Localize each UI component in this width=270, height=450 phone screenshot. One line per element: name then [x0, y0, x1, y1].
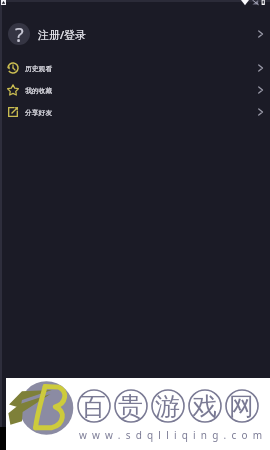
- staticText: ?: [15, 23, 24, 43]
- staticText: 网: [229, 391, 254, 422]
- staticText: 百: [81, 391, 106, 422]
- staticText: 注册/登录: [38, 27, 87, 42]
- button[interactable]: 分享好友: [0, 101, 270, 123]
- button[interactable]: 我的收藏: [0, 79, 270, 101]
- staticText: 戏: [192, 391, 217, 422]
- button[interactable]: ?: [0, 14, 270, 54]
- staticText: 贵: [118, 391, 143, 422]
- staticText: 历史观看: [25, 64, 53, 73]
- button[interactable]: 历史观看: [0, 57, 270, 79]
- staticText: 游: [155, 391, 180, 422]
- staticText: www.sdqlliqing.com: [79, 428, 268, 442]
- staticText: 我的收藏: [25, 86, 53, 95]
- staticText: 分享好友: [25, 108, 53, 117]
